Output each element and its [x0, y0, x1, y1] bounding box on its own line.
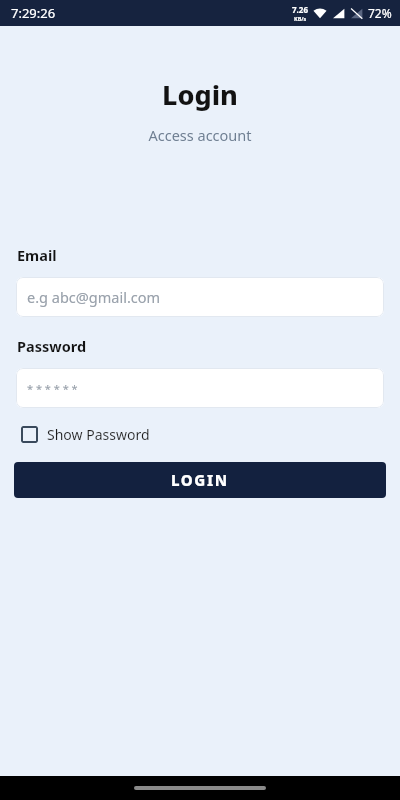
staticText: Email	[17, 245, 57, 265]
button[interactable]: Email input	[16, 277, 384, 317]
staticText: Password	[17, 336, 87, 356]
staticText: Access account	[0, 125, 400, 145]
staticText: 7.26	[292, 4, 308, 15]
staticText: Login	[0, 76, 400, 113]
staticText: e.g abc@gmail.com	[27, 287, 161, 307]
button[interactable]: Show Password	[17, 418, 154, 451]
button[interactable]: Password input	[16, 368, 384, 408]
staticText: KB/s	[294, 15, 307, 22]
staticText: * * * * * *	[27, 381, 78, 396]
staticText: Show Password	[47, 425, 150, 444]
button[interactable]: LOGIN	[14, 462, 386, 498]
staticText: 72%	[368, 5, 392, 21]
staticText: LOGIN	[171, 470, 229, 490]
staticText: 7:29:26	[11, 4, 56, 22]
